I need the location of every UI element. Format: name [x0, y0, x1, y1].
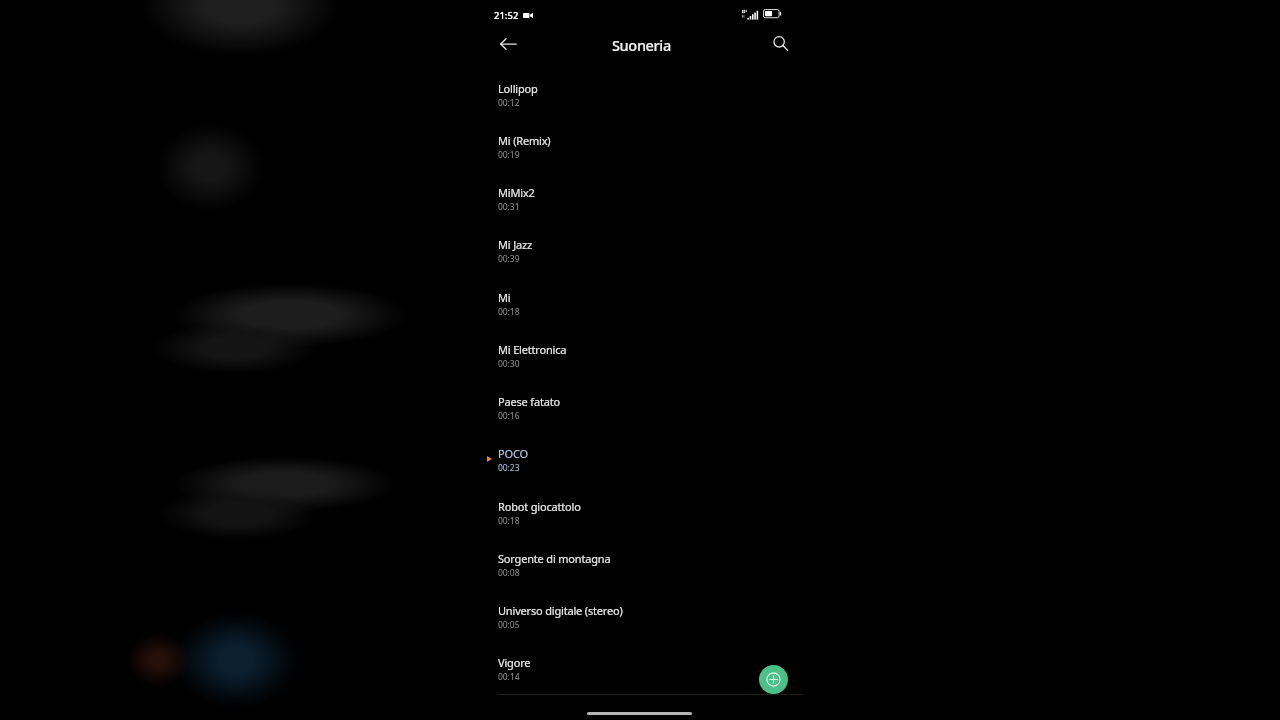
- staticText: Universo digitale (stereo): [498, 603, 623, 618]
- button[interactable]: Mi Elettronica: [474, 329, 804, 381]
- staticText: Suoneria: [612, 35, 671, 55]
- staticText: 21:52: [494, 9, 519, 21]
- staticText: Sorgente di montagna: [498, 551, 611, 566]
- staticText: 00:31: [498, 201, 520, 213]
- staticText: 00:16: [498, 410, 520, 422]
- button[interactable]: Sorgente di montagna: [474, 538, 804, 590]
- button[interactable]: Mi: [474, 277, 804, 329]
- staticText: Paese fatato: [498, 394, 560, 409]
- button[interactable]: MiMix2: [474, 172, 804, 224]
- staticText: Vigore: [498, 655, 531, 670]
- staticText: Lollipop: [498, 81, 538, 96]
- button[interactable]: Lollipop: [474, 68, 804, 120]
- button[interactable]: Add ringtone: [759, 665, 788, 694]
- staticText: Mi Elettronica: [498, 342, 567, 357]
- button[interactable]: POCO: [474, 433, 804, 485]
- button[interactable]: Mi Jazz: [474, 224, 804, 276]
- staticText: Robot giocattolo: [498, 499, 581, 514]
- button[interactable]: Universo digitale (stereo): [474, 590, 804, 642]
- button[interactable]: Vigore: [474, 642, 804, 694]
- staticText: 00:30: [498, 358, 520, 370]
- button[interactable]: Mi (Remix): [474, 120, 804, 172]
- staticText: 00:05: [498, 619, 520, 631]
- staticText: 00:08: [498, 567, 520, 579]
- button[interactable]: Back: [492, 28, 524, 60]
- staticText: MiMix2: [498, 185, 535, 200]
- button[interactable]: Paese fatato: [474, 381, 804, 433]
- staticText: 00:39: [498, 253, 520, 265]
- staticText: 00:14: [498, 671, 520, 683]
- staticText: POCO: [498, 446, 528, 461]
- staticText: 00:12: [498, 97, 520, 109]
- staticText: Mi (Remix): [498, 133, 551, 148]
- button[interactable]: Search: [764, 27, 796, 59]
- staticText: 00:18: [498, 515, 520, 527]
- button[interactable]: Robot giocattolo: [474, 486, 804, 538]
- staticText: 00:19: [498, 149, 520, 161]
- staticText: 00:18: [498, 306, 520, 318]
- staticText: Mi Jazz: [498, 237, 532, 252]
- staticText: 00:23: [498, 462, 520, 474]
- staticText: Mi: [498, 290, 511, 305]
